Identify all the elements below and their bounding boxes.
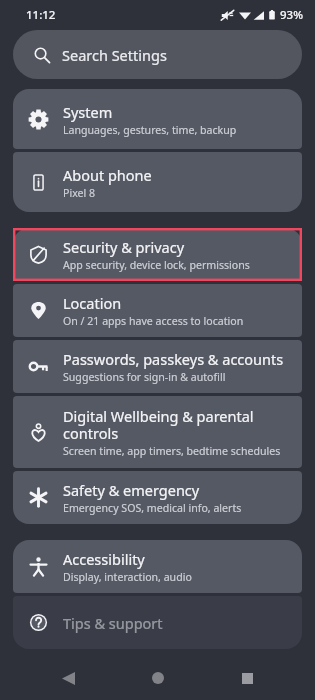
staticText: Tips & support [63, 613, 163, 633]
button[interactable]: Tips & support [13, 596, 302, 649]
staticText: Safety & emergency [63, 480, 200, 500]
button[interactable]: Recent apps [225, 656, 269, 700]
staticText: Screen time, app timers, bedtime schedul… [63, 444, 281, 458]
button[interactable]: Safety & emergency [13, 471, 302, 524]
staticText: Emergency SOS, medical info, alerts [63, 501, 242, 515]
staticText: Languages, gestures, time, backup [63, 123, 237, 137]
button[interactable]: About phone [13, 152, 302, 212]
button[interactable]: Passwords, passkeys & accounts [13, 340, 302, 393]
button[interactable]: Security & privacy [13, 228, 302, 281]
staticText: 93% [280, 7, 303, 23]
staticText: 11:12 [26, 7, 56, 23]
button[interactable]: Accessibility [13, 540, 302, 593]
button[interactable]: Search Settings [13, 30, 302, 79]
button[interactable]: Back [46, 656, 90, 700]
staticText: System [63, 102, 113, 122]
staticText: App security, device lock, permissions [63, 258, 250, 272]
staticText: Digital Wellbeing & parental controls [63, 406, 288, 443]
staticText: Pixel 8 [63, 186, 96, 200]
button[interactable]: System [13, 89, 302, 149]
staticText: Location [63, 293, 122, 313]
staticText: Suggestions for sign-in & autofill [63, 370, 226, 384]
staticText: About phone [63, 165, 152, 185]
button[interactable]: Home [136, 656, 180, 700]
button[interactable]: Digital Wellbeing & parental controls [13, 396, 302, 468]
staticText: Display, interaction, audio [63, 570, 192, 584]
staticText: Accessibility [63, 549, 145, 569]
button[interactable]: Location [13, 284, 302, 337]
staticText: On / 21 apps have access to location [63, 314, 244, 328]
staticText: Passwords, passkeys & accounts [63, 349, 284, 369]
staticText: Search Settings [62, 45, 167, 65]
staticText: Security & privacy [63, 237, 185, 257]
